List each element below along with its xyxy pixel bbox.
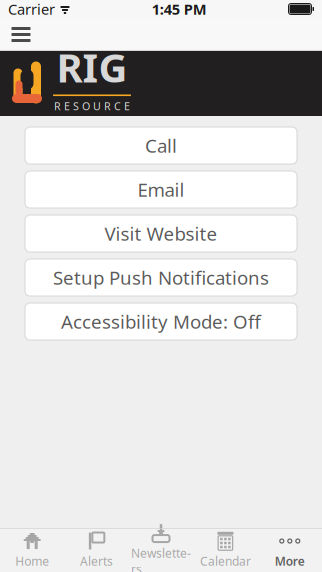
staticText: Calendar xyxy=(200,553,251,569)
button[interactable]: Home xyxy=(0,528,64,572)
button[interactable]: More xyxy=(258,528,322,572)
staticText: Home xyxy=(15,553,49,569)
staticText: Newsletters xyxy=(131,545,191,572)
staticText: More xyxy=(275,553,305,569)
staticText: Accessibility Mode: Off xyxy=(61,309,261,334)
button[interactable]: Call xyxy=(25,127,297,164)
button[interactable]: Visit Website xyxy=(25,215,297,252)
button[interactable]: Calendar xyxy=(193,528,258,572)
staticText: 1:45 PM xyxy=(152,0,207,19)
staticText: Call xyxy=(145,133,177,158)
staticText: INDUSTRY GROUP xyxy=(52,114,132,127)
staticText: Visit Website xyxy=(104,221,217,246)
button[interactable]: Alerts xyxy=(64,528,129,572)
staticText: Carrier xyxy=(8,0,55,19)
button[interactable]: Accessibility Mode: Off xyxy=(25,303,297,340)
staticText: Setup Push Notifications xyxy=(53,265,269,290)
button[interactable]: Email xyxy=(25,171,297,208)
button[interactable]: Menu xyxy=(0,18,42,51)
button[interactable]: Setup Push Notifications xyxy=(25,259,297,296)
button[interactable]: Newsletters xyxy=(129,528,193,572)
staticText: Alerts xyxy=(80,553,113,569)
staticText: Email xyxy=(137,177,184,202)
staticText: R E S O U R C E xyxy=(54,99,130,113)
staticText: RIG xyxy=(56,40,127,93)
